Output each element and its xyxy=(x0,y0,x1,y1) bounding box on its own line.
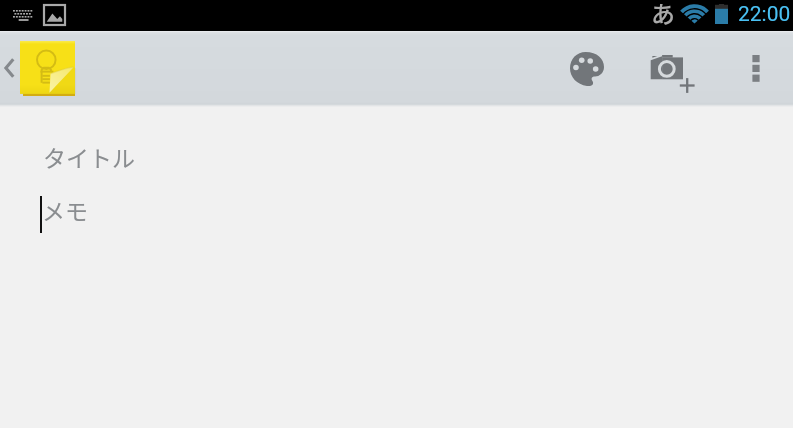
button[interactable]: Navigate up xyxy=(0,31,75,107)
button[interactable]: メモ xyxy=(0,173,793,233)
button[interactable]: タイトル xyxy=(0,109,793,173)
button[interactable]: Add photo xyxy=(633,31,707,107)
other: Navigate up xyxy=(5,58,14,78)
button[interactable]: More options xyxy=(731,31,781,107)
staticText: あ xyxy=(651,0,675,26)
button[interactable]: Change color xyxy=(554,31,620,107)
staticText: 22:00 xyxy=(738,2,791,27)
staticText: メモ xyxy=(42,193,88,226)
staticText: タイトル xyxy=(43,140,135,173)
